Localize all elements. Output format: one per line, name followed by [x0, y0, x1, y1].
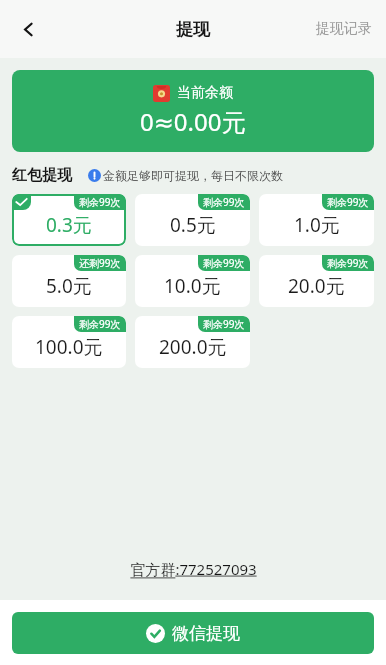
staticText: 剩余99次	[203, 195, 245, 209]
button[interactable]: 剩余99次	[135, 255, 250, 307]
staticText: 1.0元	[294, 212, 340, 238]
staticText: 0≈0.00元	[140, 105, 246, 138]
button[interactable]: 剩余99次	[135, 316, 250, 368]
staticText: 还剩99次	[79, 256, 121, 270]
button[interactable]: Back	[6, 7, 50, 51]
staticText: 微信提现	[172, 623, 240, 644]
staticText: 红包提现	[12, 166, 72, 185]
staticText: 剩余99次	[203, 256, 245, 270]
staticText: 剩余99次	[327, 195, 369, 209]
staticText: 0.3元	[46, 212, 92, 238]
staticText: 提现	[176, 19, 210, 40]
staticText: 当前余额	[177, 84, 233, 102]
button[interactable]: 官方群:772527093	[0, 559, 386, 579]
staticText: 10.0元	[164, 273, 221, 299]
button[interactable]: 剩余99次	[259, 255, 374, 307]
button[interactable]: 还剩99次	[12, 255, 126, 307]
button[interactable]: 剩余99次	[135, 194, 250, 246]
button[interactable]: 微信提现	[12, 612, 374, 654]
staticText: 官方群:772527093	[130, 559, 257, 579]
staticText: 20.0元	[288, 273, 345, 299]
staticText: 剩余99次	[79, 317, 121, 331]
staticText: 剩余99次	[327, 256, 369, 270]
staticText: 200.0元	[159, 334, 227, 360]
staticText: 5.0元	[46, 273, 92, 299]
staticText: 剩余99次	[79, 195, 121, 209]
button[interactable]: 提现记录	[302, 10, 386, 48]
staticText: 0.5元	[170, 212, 216, 238]
staticText: 剩余99次	[203, 317, 245, 331]
staticText: 提现记录	[316, 20, 372, 38]
staticText: 100.0元	[35, 334, 103, 360]
button[interactable]: 剩余99次	[259, 194, 374, 246]
staticText: 金额足够即可提现，每日不限次数	[103, 168, 283, 183]
button[interactable]: 剩余99次	[12, 194, 126, 246]
button[interactable]: 剩余99次	[12, 316, 126, 368]
